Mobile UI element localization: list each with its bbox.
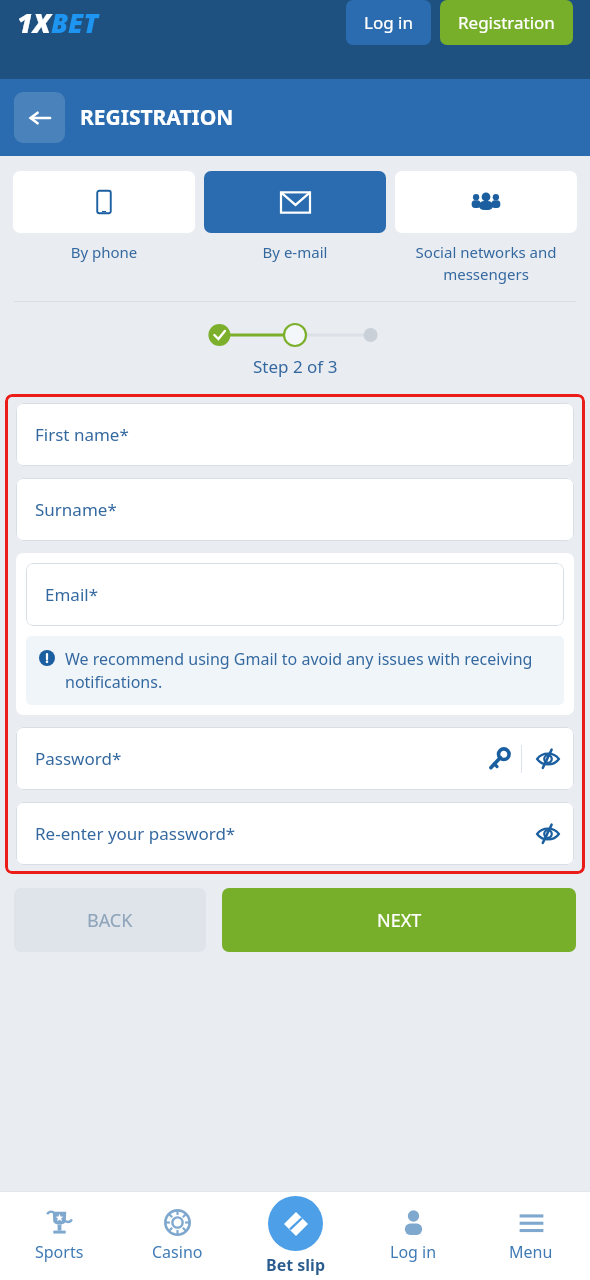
button[interactable]: Show password: [522, 733, 574, 785]
button[interactable]: Password*: [16, 727, 574, 790]
staticText: By phone: [13, 242, 195, 262]
staticText: Log in: [390, 1241, 437, 1263]
staticText: We recommend using Gmail to avoid any is…: [65, 648, 552, 693]
staticText: Password*: [35, 747, 122, 770]
button[interactable]: Menu: [472, 1191, 590, 1280]
staticText: Registration: [458, 11, 555, 34]
staticText: REGISTRATION: [80, 103, 234, 132]
button[interactable]: First name*: [16, 403, 574, 466]
button[interactable]: Log in: [346, 0, 431, 45]
staticText: Re-enter your password*: [35, 822, 236, 845]
button[interactable]: By phone: [13, 171, 195, 262]
staticText: Step 2 of 3: [253, 355, 338, 378]
button[interactable]: Generate password: [477, 737, 521, 781]
button[interactable]: Email*: [26, 563, 564, 626]
button[interactable]: Bet slip: [236, 1191, 354, 1280]
button[interactable]: By e-mail: [204, 171, 386, 262]
staticText: NEXT: [377, 908, 422, 933]
staticText: Casino: [152, 1241, 203, 1263]
staticText: Menu: [509, 1241, 553, 1263]
staticText: BET: [51, 4, 99, 41]
button[interactable]: Log in: [354, 1191, 472, 1280]
staticText: Email*: [45, 583, 99, 606]
button[interactable]: Re-enter your password*: [16, 802, 574, 865]
staticText: 1X: [17, 4, 51, 41]
button[interactable]: Registration: [440, 0, 573, 45]
button[interactable]: BACK: [14, 888, 206, 952]
button[interactable]: Social networks and messengers: [395, 171, 577, 285]
staticText: BACK: [87, 908, 133, 933]
staticText: Surname*: [35, 498, 117, 521]
staticText: First name*: [35, 423, 129, 446]
button[interactable]: Back: [14, 92, 65, 143]
button[interactable]: Show password: [522, 808, 574, 860]
staticText: Log in: [364, 11, 413, 34]
staticText: Sports: [35, 1241, 84, 1263]
button[interactable]: NEXT: [222, 888, 576, 952]
button[interactable]: Surname*: [16, 478, 574, 541]
button[interactable]: Casino: [118, 1191, 236, 1280]
staticText: By e-mail: [204, 242, 386, 262]
button[interactable]: Sports: [0, 1191, 118, 1280]
staticText: Bet slip: [266, 1254, 325, 1276]
staticText: Social networks and messengers: [395, 242, 577, 285]
